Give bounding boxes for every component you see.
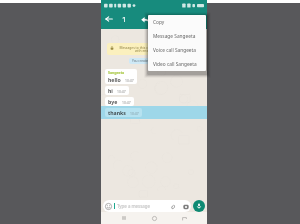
staticText: You created group "Sangeeta" xyxy=(132,59,177,63)
button[interactable]: Camera xyxy=(182,203,189,210)
button[interactable]: Delete xyxy=(153,9,167,29)
button[interactable]: Star xyxy=(168,9,182,29)
staticText: Type a message xyxy=(117,203,150,209)
staticText: 1 xyxy=(122,14,127,24)
button[interactable]: Attach xyxy=(169,203,176,210)
staticText: hi xyxy=(108,87,113,94)
staticText: Voice call Sangeeta xyxy=(153,47,196,54)
button[interactable]: Recent apps xyxy=(117,212,131,224)
button[interactable]: Voice message xyxy=(193,200,205,212)
button[interactable]: Message Sangeeta xyxy=(148,29,206,43)
staticText: Video call Sangeeta xyxy=(153,61,197,68)
button[interactable]: Type a message xyxy=(103,200,191,212)
button[interactable]: Home xyxy=(147,212,161,224)
staticText: Copy xyxy=(153,19,165,26)
staticText: thanks xyxy=(108,109,126,116)
staticText: 10:47 xyxy=(122,100,131,105)
staticText: hello xyxy=(108,76,121,83)
staticText: Sangeeta xyxy=(108,70,125,75)
staticText: Message Sangeeta xyxy=(153,33,196,40)
button[interactable]: Copy xyxy=(148,15,206,29)
button[interactable]: Video call Sangeeta xyxy=(148,57,206,71)
staticText: 10:47 xyxy=(117,89,126,94)
staticText: Messages to this chat and calls are now … xyxy=(116,45,197,53)
button[interactable]: Back xyxy=(177,212,191,224)
staticText: bye xyxy=(108,98,118,105)
button[interactable]: Voice call Sangeeta xyxy=(148,43,206,57)
staticText: 10:47 xyxy=(130,111,139,116)
button[interactable]: Forward xyxy=(138,9,152,29)
staticText: 10:47 xyxy=(125,78,134,83)
button[interactable]: Back xyxy=(102,9,115,29)
button[interactable]: More options xyxy=(191,9,205,29)
